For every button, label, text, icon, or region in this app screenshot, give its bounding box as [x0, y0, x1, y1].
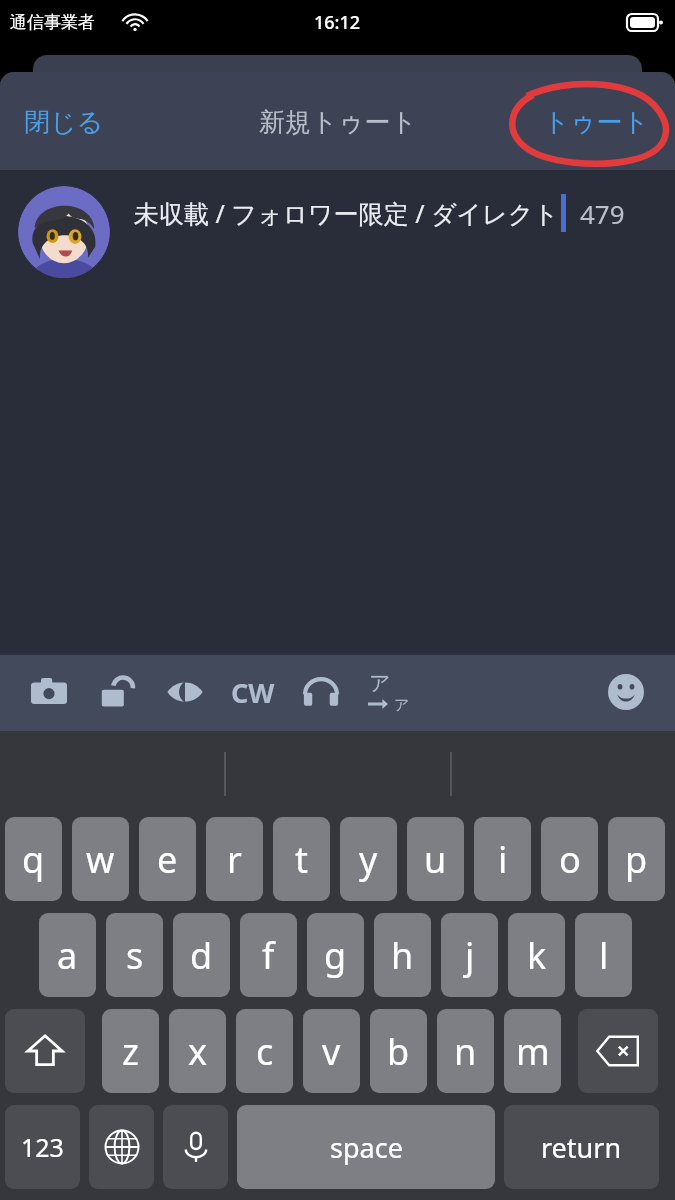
button[interactable]: Visibility	[94, 669, 140, 715]
button[interactable]: Numbers	[5, 1105, 80, 1189]
staticText: z	[122, 1027, 139, 1076]
button[interactable]: f	[240, 913, 297, 997]
staticText: h	[391, 931, 414, 980]
staticText: 16:12	[314, 10, 361, 35]
staticText: i	[498, 835, 508, 884]
button[interactable]: j	[441, 913, 498, 997]
staticText: p	[625, 835, 648, 884]
button[interactable]: space	[237, 1105, 495, 1189]
button[interactable]: l	[575, 913, 632, 997]
staticText: t	[295, 835, 308, 884]
staticText: c	[256, 1027, 274, 1076]
staticText: 通信事業者	[10, 12, 95, 33]
button[interactable]: d	[173, 913, 230, 997]
staticText: y	[359, 835, 378, 884]
staticText: b	[387, 1027, 410, 1076]
staticText: n	[454, 1027, 477, 1076]
staticText: e	[157, 835, 178, 884]
staticText: f	[262, 931, 275, 980]
button[interactable]: Backspace	[578, 1009, 658, 1093]
button[interactable]: t	[273, 817, 330, 901]
button[interactable]: u	[407, 817, 464, 901]
button[interactable]: Language	[366, 669, 412, 715]
button[interactable]: z	[102, 1009, 159, 1093]
button[interactable]: Audio	[298, 669, 344, 715]
button[interactable]: トゥート	[537, 98, 655, 147]
button[interactable]: p	[608, 817, 665, 901]
button[interactable]: e	[139, 817, 196, 901]
staticText: 新規トゥート	[259, 106, 417, 139]
button[interactable]: return	[504, 1105, 659, 1189]
staticText: return	[541, 1129, 622, 1166]
button[interactable]: Content warning	[230, 669, 276, 715]
staticText: 123	[21, 1130, 64, 1164]
button[interactable]: y	[340, 817, 397, 901]
button[interactable]: v	[303, 1009, 360, 1093]
button[interactable]: c	[236, 1009, 293, 1093]
staticText: o	[559, 835, 581, 884]
button[interactable]: i	[474, 817, 531, 901]
staticText: space	[330, 1129, 403, 1166]
button[interactable]: x	[169, 1009, 226, 1093]
button[interactable]: w	[72, 817, 129, 901]
button[interactable]: g	[307, 913, 364, 997]
button[interactable]: a	[39, 913, 96, 997]
staticText: g	[324, 931, 347, 980]
button[interactable]: Next keyboard	[89, 1105, 154, 1189]
staticText: u	[424, 835, 447, 884]
staticText: q	[22, 835, 45, 884]
button[interactable]: Shift	[5, 1009, 85, 1093]
button[interactable]: q	[5, 817, 62, 901]
button[interactable]: 未収載 / フォロワー限定 / ダイレクト	[0, 172, 675, 653]
button[interactable]: Camera	[26, 669, 72, 715]
staticText: 未収載 / フォロワー限定 / ダイレクト	[134, 196, 559, 230]
staticText: ア	[394, 696, 410, 715]
staticText: m	[516, 1027, 550, 1076]
staticText: 479	[580, 196, 625, 231]
staticText: l	[599, 931, 609, 980]
button[interactable]: r	[206, 817, 263, 901]
button[interactable]: Sensitive content	[162, 669, 208, 715]
button[interactable]: 閉じる	[18, 98, 110, 147]
staticText: ア	[369, 670, 391, 696]
button[interactable]: s	[106, 913, 163, 997]
button[interactable]: k	[508, 913, 565, 997]
staticText: トゥート	[543, 106, 649, 139]
button[interactable]: m	[504, 1009, 561, 1093]
button[interactable]: o	[541, 817, 598, 901]
button[interactable]: n	[437, 1009, 494, 1093]
staticText: r	[227, 835, 242, 884]
staticText: CW	[231, 674, 275, 711]
staticText: k	[527, 931, 547, 980]
staticText: a	[57, 931, 78, 980]
staticText: v	[322, 1027, 341, 1076]
staticText: s	[126, 931, 144, 980]
staticText: d	[190, 931, 213, 980]
staticText: 閉じる	[24, 106, 104, 139]
staticText: x	[188, 1027, 208, 1076]
button[interactable]: h	[374, 913, 431, 997]
staticText: w	[86, 835, 115, 884]
button[interactable]: Emoji	[603, 669, 649, 715]
button[interactable]: b	[370, 1009, 427, 1093]
button[interactable]: Dictation	[163, 1105, 228, 1189]
staticText: j	[465, 931, 475, 980]
